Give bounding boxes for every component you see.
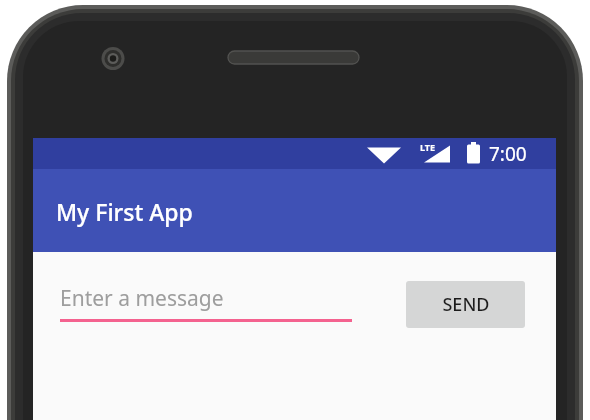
- staticText: My First App: [56, 196, 193, 227]
- staticText: Enter a message: [60, 284, 224, 313]
- staticText: 7:00: [489, 141, 527, 167]
- staticText: LTE: [420, 141, 436, 153]
- button[interactable]: Enter a message: [60, 280, 352, 322]
- staticText: SEND: [442, 292, 490, 317]
- button[interactable]: SEND: [406, 281, 525, 328]
